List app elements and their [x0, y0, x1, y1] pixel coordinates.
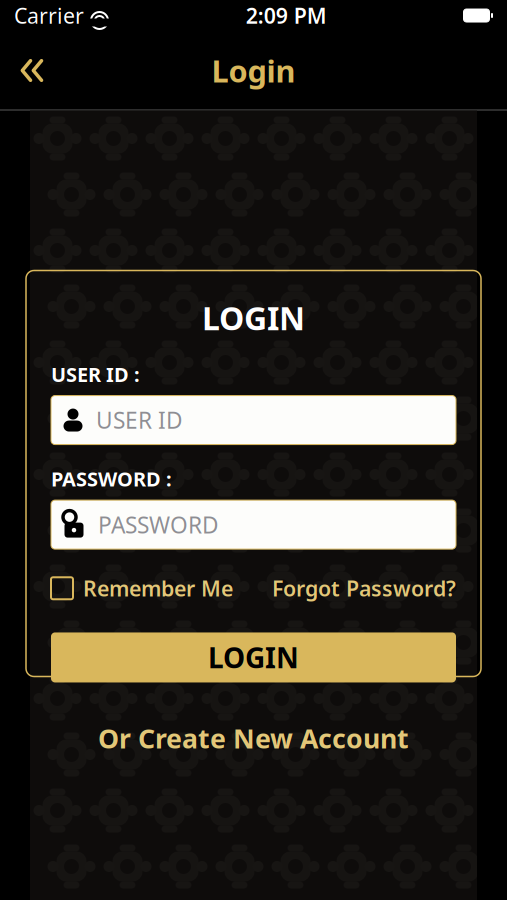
staticText: LOGIN	[202, 296, 305, 339]
button[interactable]: Or Create New Account	[84, 712, 423, 764]
staticText: USER ID	[96, 405, 183, 435]
button[interactable]: Remember Me	[51, 568, 233, 608]
button[interactable]: LOGIN	[51, 632, 456, 682]
staticText: Or Create New Account	[98, 720, 409, 756]
staticText: Login	[211, 50, 295, 91]
staticText: Remember Me	[83, 574, 233, 602]
staticText: PASSWORD :	[51, 466, 172, 492]
button[interactable]: Back	[6, 48, 58, 92]
staticText: PASSWORD	[98, 510, 219, 540]
staticText: LOGIN	[208, 639, 299, 676]
button[interactable]: Forgot Password?	[272, 568, 456, 608]
staticText: 2:09 PM	[246, 1, 327, 30]
staticText: Forgot Password?	[272, 574, 456, 602]
staticText: USER ID :	[51, 361, 140, 388]
staticText: Carrier	[14, 1, 84, 30]
